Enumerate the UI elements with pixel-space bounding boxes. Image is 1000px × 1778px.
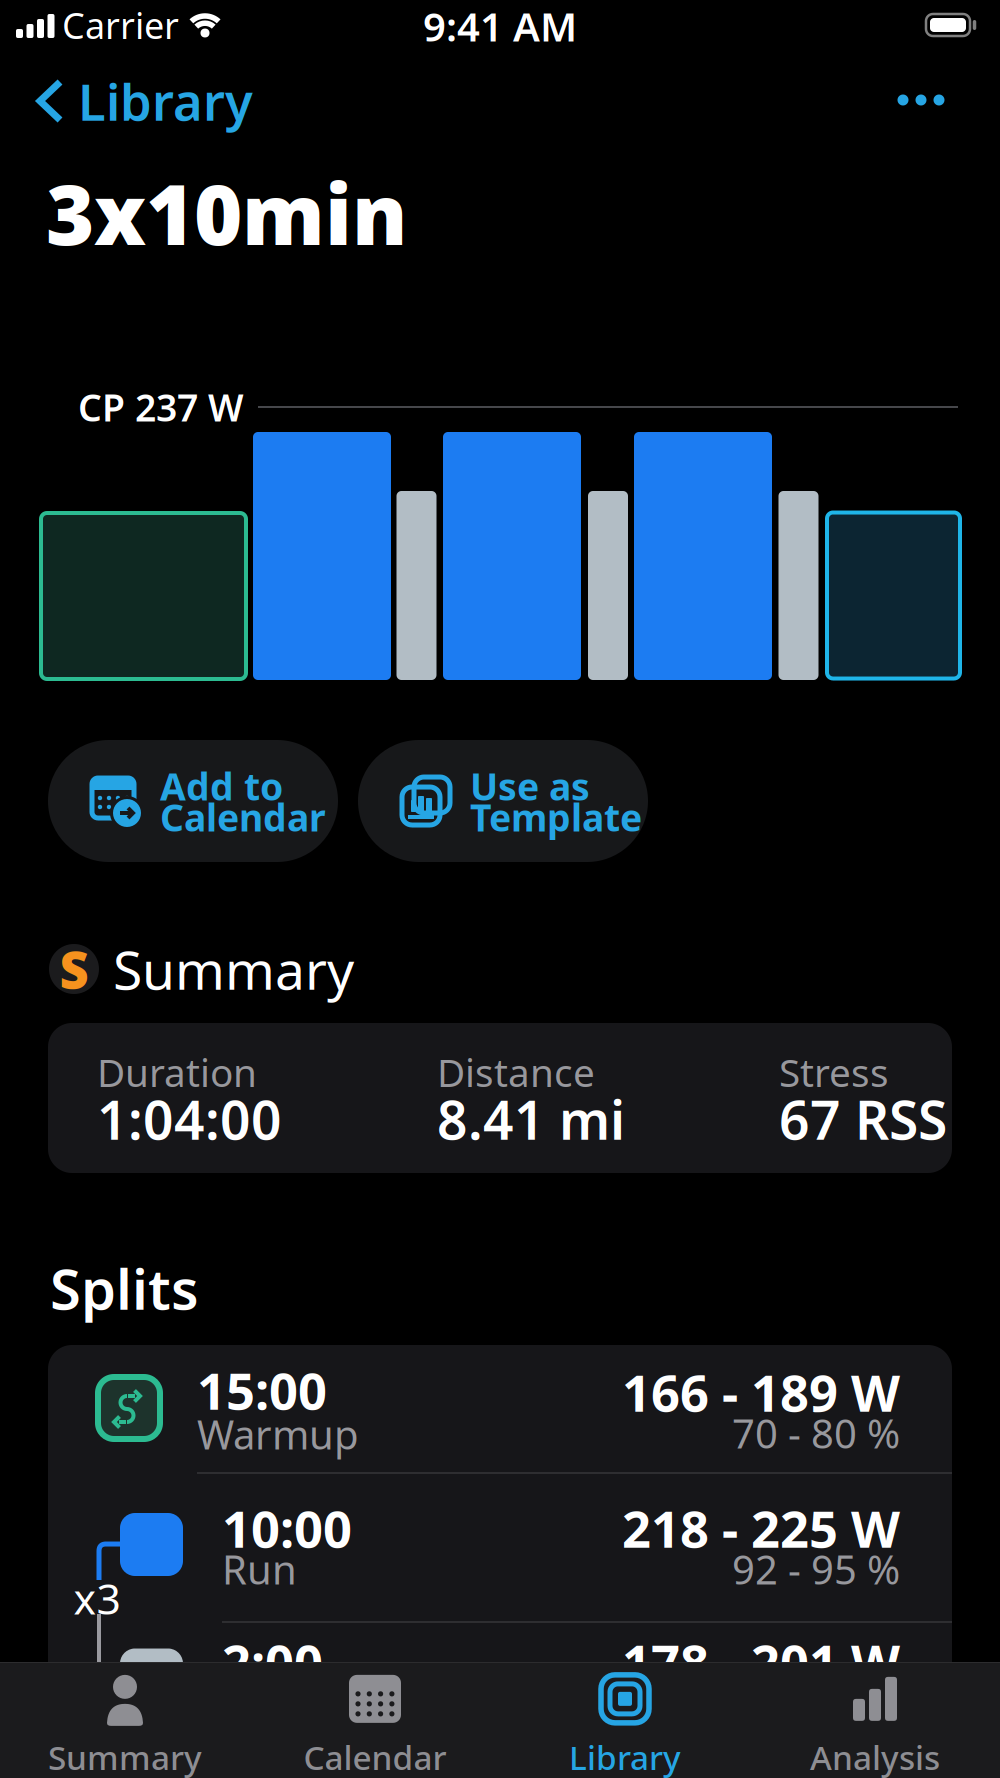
staticText: Analysis (810, 1735, 940, 1778)
button[interactable]: More (881, 70, 961, 130)
staticText: 10:00 (222, 1494, 352, 1562)
staticText: Summary (48, 1735, 202, 1778)
button[interactable]: Calendar (270, 1671, 480, 1778)
staticText: Calendar (160, 792, 326, 842)
staticText: 166 - 189 W (622, 1358, 900, 1426)
staticText: Distance (437, 1046, 595, 1098)
staticText: Duration (97, 1046, 257, 1098)
staticText: 67 RSS (779, 1084, 947, 1154)
staticText: 8.41 mi (437, 1084, 625, 1154)
staticText: 9:41 AM (423, 0, 577, 52)
staticText: Calendar (303, 1735, 446, 1778)
staticText: Stress (779, 1046, 889, 1098)
staticText: 92 - 95 % (732, 1542, 900, 1595)
staticText: x3 (73, 1570, 120, 1626)
staticText: 218 - 225 W (622, 1494, 900, 1562)
staticText: S (59, 935, 88, 1003)
staticText: Use as (470, 761, 590, 811)
staticText: Library (78, 67, 253, 135)
staticText: Summary (113, 934, 354, 1004)
staticText: Template (470, 792, 642, 842)
staticText: Add to (160, 761, 283, 811)
staticText: 15:00 (197, 1356, 327, 1424)
staticText: 178 - 201 W (622, 1628, 900, 1696)
staticText: 1:04:00 (97, 1084, 282, 1154)
staticText: 70 - 80 % (732, 1406, 900, 1459)
staticText: 3x10min (46, 158, 407, 268)
staticText: Splits (50, 1251, 199, 1325)
staticText: 2:00 (222, 1628, 323, 1696)
button[interactable]: Use as (358, 740, 648, 862)
button[interactable]: Library (36, 71, 266, 131)
staticText: Warmup (197, 1407, 359, 1460)
button[interactable]: Analysis (770, 1671, 980, 1778)
button[interactable]: Summary (20, 1671, 230, 1778)
staticText: CP 237 W (78, 382, 244, 432)
staticText: Run (222, 1542, 297, 1595)
button[interactable]: Add to (48, 740, 338, 862)
staticText: Library (569, 1735, 681, 1778)
staticText: Carrier (62, 1, 179, 49)
button[interactable]: Library (520, 1671, 730, 1778)
